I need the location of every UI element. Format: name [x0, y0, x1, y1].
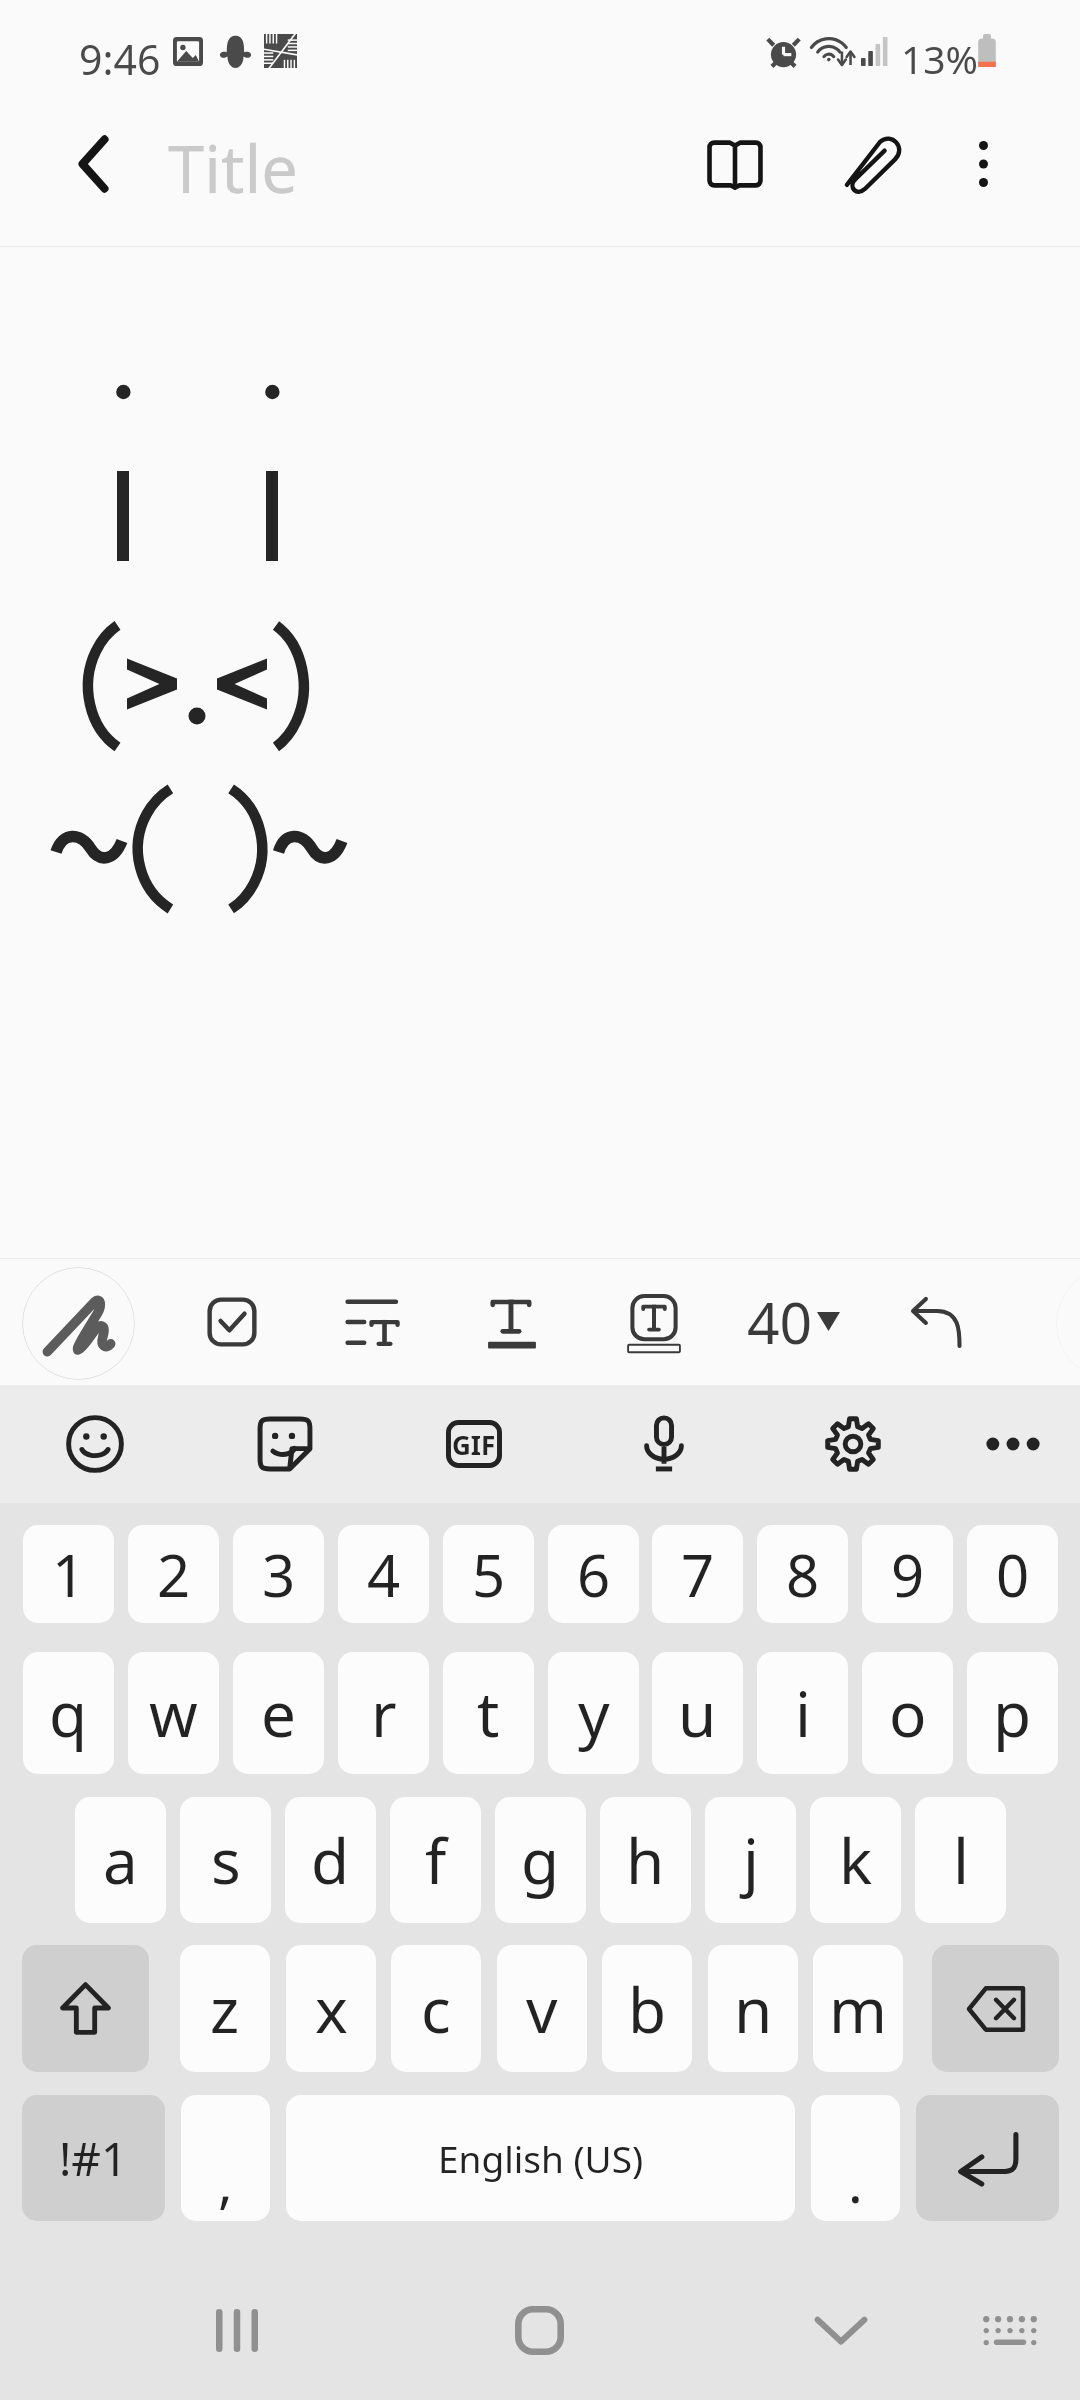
button[interactable]: Emoji — [36, 1385, 154, 1503]
button[interactable]: Voice input — [605, 1385, 723, 1503]
staticText: j — [743, 1818, 759, 1902]
button[interactable]: l — [915, 1797, 1006, 1923]
button[interactable]: w — [128, 1652, 219, 1774]
staticText: x — [315, 1967, 348, 2051]
button[interactable]: h — [600, 1797, 691, 1923]
staticText: s — [211, 1818, 241, 1902]
button[interactable]: 5 — [443, 1525, 534, 1623]
button[interactable]: Handwriting — [22, 1267, 135, 1380]
button[interactable]: Text background — [599, 1267, 709, 1377]
button[interactable]: Back — [29, 100, 157, 228]
button[interactable]: Settings — [794, 1385, 912, 1503]
staticText: 1 — [52, 1535, 86, 1614]
button[interactable]: Reading mode — [671, 100, 799, 228]
button[interactable]: Change keyboard — [940, 2260, 1080, 2400]
button[interactable]: a — [75, 1797, 166, 1923]
button[interactable]: 4 — [338, 1525, 429, 1623]
button[interactable]: More — [954, 1385, 1072, 1503]
button[interactable]: Stickers — [226, 1385, 344, 1503]
staticText: c — [421, 1967, 451, 2051]
button[interactable]: y — [548, 1652, 639, 1774]
button[interactable]: Home — [469, 2260, 609, 2400]
button[interactable]: n — [708, 1945, 798, 2072]
button[interactable]: e — [233, 1652, 324, 1774]
staticText: Title — [168, 124, 298, 213]
staticText: d — [311, 1818, 350, 1902]
button[interactable]: 7 — [652, 1525, 743, 1623]
staticText: e — [261, 1671, 296, 1755]
button[interactable]: 8 — [757, 1525, 848, 1623]
staticText: 13% — [901, 32, 979, 85]
staticText: l — [953, 1818, 969, 1902]
button[interactable]: Recents — [167, 2260, 307, 2400]
button[interactable]: 0 — [967, 1525, 1058, 1623]
button[interactable]: c — [391, 1945, 481, 2072]
button[interactable]: i — [757, 1652, 848, 1774]
staticText: 4 — [367, 1535, 401, 1614]
button[interactable]: !#1 — [22, 2095, 165, 2221]
button[interactable]: 1 — [23, 1525, 114, 1623]
staticText: u — [678, 1671, 717, 1755]
button[interactable]: p — [967, 1652, 1058, 1774]
staticText: . — [848, 2144, 863, 2219]
staticText: 9 — [891, 1535, 925, 1614]
staticText: GIF — [452, 1427, 496, 1462]
button[interactable]: g — [495, 1797, 586, 1923]
staticText: !#1 — [59, 2127, 128, 2190]
button[interactable]: 3 — [233, 1525, 324, 1623]
button[interactable]: Shift — [22, 1945, 149, 2072]
staticText: English (US) — [438, 2133, 644, 2183]
button[interactable]: j — [705, 1797, 796, 1923]
button[interactable]: z — [180, 1945, 270, 2072]
staticText: , — [218, 2144, 233, 2219]
staticText: w — [149, 1671, 198, 1755]
button[interactable]: v — [497, 1945, 587, 2072]
button[interactable]: b — [602, 1945, 692, 2072]
staticText: g — [521, 1818, 560, 1902]
staticText: h — [626, 1818, 665, 1902]
button[interactable]: 40 — [747, 1283, 813, 1361]
staticText: n — [734, 1967, 773, 2051]
button[interactable]: 6 — [548, 1525, 639, 1623]
staticText: 8 — [786, 1535, 820, 1614]
staticText: t — [477, 1671, 500, 1755]
button[interactable]: t — [443, 1652, 534, 1774]
button[interactable]: More options — [919, 100, 1047, 228]
button[interactable]: 2 — [128, 1525, 219, 1623]
button[interactable]: r — [338, 1652, 429, 1774]
button[interactable]: x — [286, 1945, 376, 2072]
staticText: z — [210, 1967, 240, 2051]
button[interactable]: Undo — [881, 1267, 991, 1377]
button[interactable]: o — [862, 1652, 953, 1774]
button[interactable]: Text style — [457, 1267, 567, 1377]
button[interactable]: s — [180, 1797, 271, 1923]
button[interactable]: English (US) — [286, 2095, 795, 2221]
button[interactable]: 9 — [862, 1525, 953, 1623]
button[interactable]: . — [811, 2095, 900, 2221]
button[interactable]: Backspace — [932, 1945, 1059, 2072]
button[interactable]: Hide keyboard — [771, 2260, 911, 2400]
staticText: a — [103, 1818, 138, 1902]
staticText: r — [371, 1671, 397, 1755]
button[interactable]: f — [390, 1797, 481, 1923]
staticText: k — [839, 1818, 873, 1902]
button[interactable]: GIF — [415, 1385, 533, 1503]
button[interactable]: k — [810, 1797, 901, 1923]
button[interactable]: Checklist — [177, 1267, 287, 1377]
staticText: y — [578, 1671, 610, 1755]
button[interactable]: Attach — [809, 100, 937, 228]
button[interactable]: Enter — [916, 2095, 1059, 2221]
button[interactable]: d — [285, 1797, 376, 1923]
staticText: 5 — [472, 1535, 506, 1614]
button[interactable]: , — [181, 2095, 270, 2221]
staticText: b — [628, 1967, 667, 2051]
staticText: 0 — [996, 1535, 1030, 1614]
button[interactable]: u — [652, 1652, 743, 1774]
button[interactable]: m — [813, 1945, 903, 2072]
button[interactable]: q — [23, 1652, 114, 1774]
button[interactable]: Paragraph — [316, 1267, 426, 1377]
staticText: q — [49, 1671, 88, 1755]
staticText: p — [993, 1671, 1032, 1755]
staticText: v — [526, 1967, 558, 2051]
staticText: 7 — [681, 1535, 715, 1614]
